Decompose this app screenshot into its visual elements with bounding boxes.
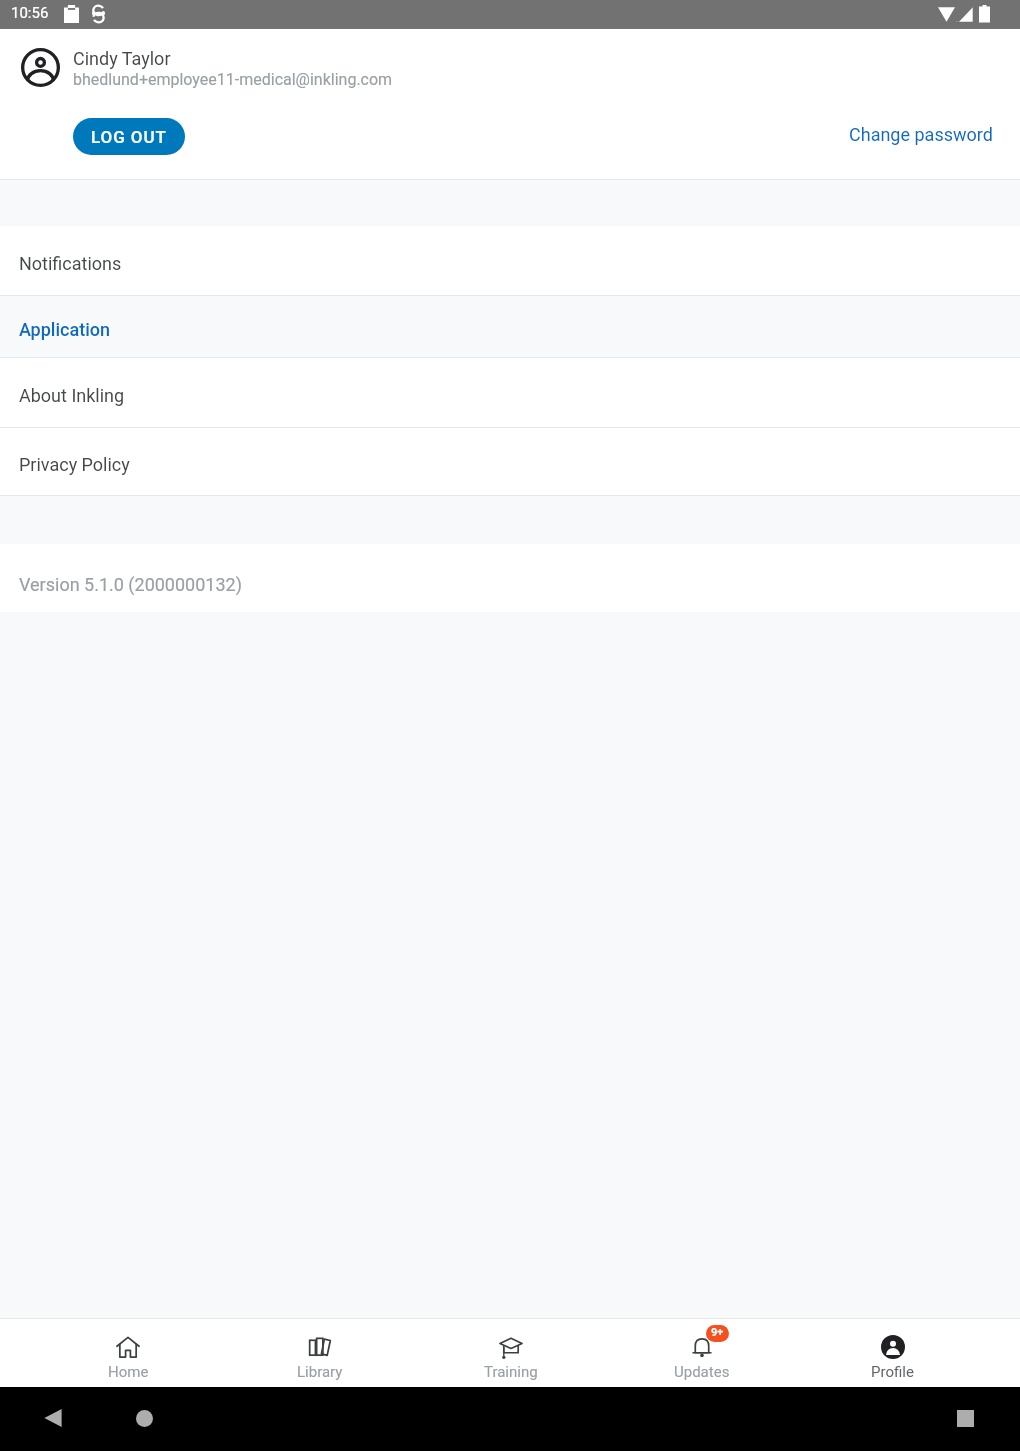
- staticText: About Inkling: [19, 385, 125, 406]
- staticText: Cindy Taylor: [73, 48, 171, 69]
- staticText: Profile: [871, 1363, 914, 1381]
- staticText: bhedlund+employee11-medical@inkling.com: [73, 70, 393, 89]
- staticText: Home: [108, 1363, 149, 1381]
- staticText: 10:56: [11, 4, 49, 22]
- staticText: Version 5.1.0 (2000000132): [19, 574, 242, 595]
- staticText: LOG OUT: [91, 127, 167, 147]
- staticText: 9+: [711, 1326, 724, 1339]
- staticText: Training: [484, 1363, 538, 1381]
- button[interactable]: LOG OUT: [73, 118, 185, 155]
- staticText: Privacy Policy: [19, 454, 130, 475]
- staticText: Updates: [674, 1363, 730, 1381]
- staticText: Change password: [849, 124, 993, 145]
- button[interactable]: Change password: [849, 124, 993, 145]
- staticText: Library: [297, 1363, 343, 1381]
- other: Back: [44, 1409, 62, 1427]
- button[interactable]: Library: [224, 1319, 415, 1387]
- other: Account avatar: [21, 48, 60, 87]
- button[interactable]: Home: [32, 1319, 224, 1387]
- button[interactable]: Privacy Policy: [0, 428, 1020, 496]
- staticText: Notifications: [19, 253, 122, 274]
- button[interactable]: About Inkling: [0, 358, 1020, 428]
- button[interactable]: Application: [0, 296, 1020, 358]
- button[interactable]: Training: [415, 1319, 606, 1387]
- button[interactable]: Profile: [797, 1319, 988, 1387]
- button[interactable]: Notifications: [0, 226, 1020, 296]
- other: Home: [136, 1410, 153, 1427]
- button[interactable]: 9+: [606, 1319, 797, 1387]
- staticText: Application: [19, 319, 111, 340]
